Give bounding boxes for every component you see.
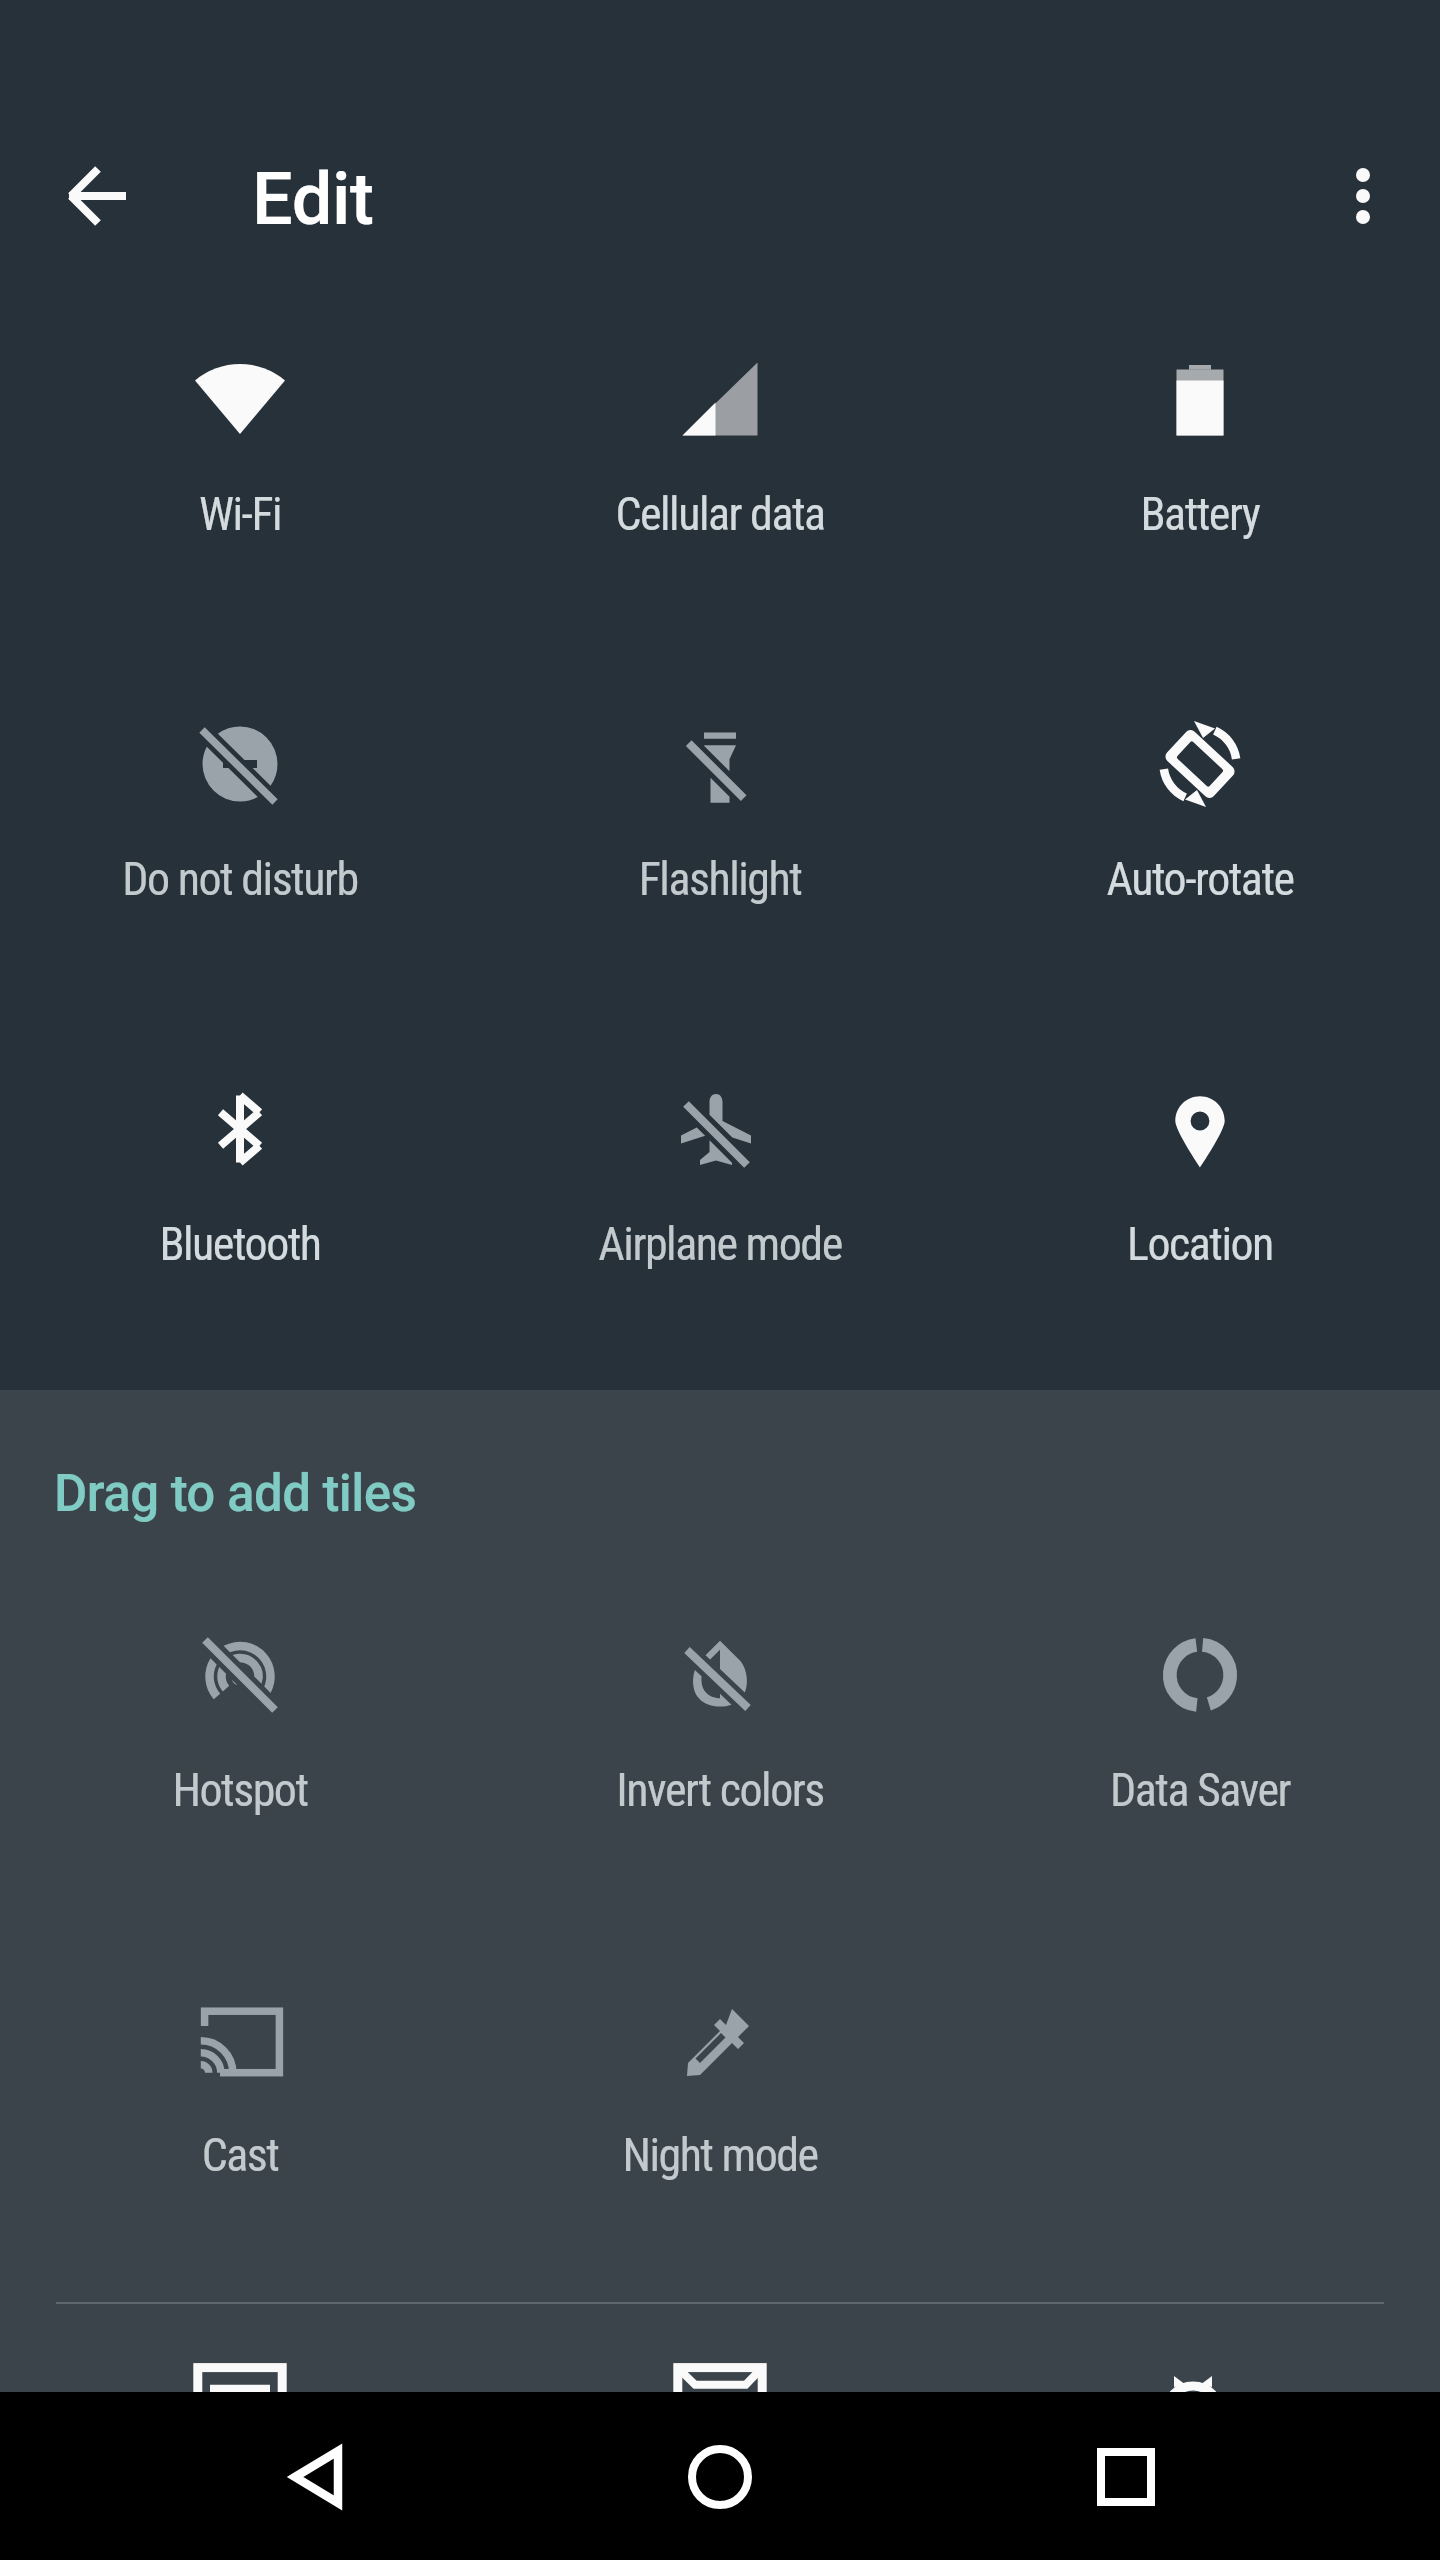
button[interactable]: Cellular data [480,299,960,549]
staticText: Flashlight [480,852,960,906]
staticText: Airplane mode [480,1217,960,1271]
button[interactable]: Back [37,136,157,256]
button[interactable]: Bluetooth [0,1029,480,1279]
staticText: Cast [0,2128,480,2182]
staticText: Night mode [480,2128,960,2182]
staticText: Battery [960,487,1440,541]
staticText: Data Saver [960,1763,1440,1817]
button[interactable]: Night mode [480,1940,960,2190]
button[interactable]: Battery [960,299,1440,549]
staticText: Drag to add tiles [54,1464,417,1524]
button[interactable]: Cast [0,1940,480,2190]
button[interactable]: Wi-Fi [0,299,480,549]
button[interactable]: Auto-rotate [960,664,1440,914]
button[interactable]: Hotspot [0,1575,480,1825]
staticText: Invert colors [480,1763,960,1817]
button[interactable]: Home [636,2393,804,2560]
staticText: Edit [252,157,374,241]
button[interactable]: Location [960,1029,1440,1279]
staticText: Cellular data [480,487,960,541]
staticText: Hotspot [0,1763,480,1817]
button[interactable]: Invert colors [480,1575,960,1825]
staticText: Do not disturb [0,852,480,906]
button[interactable]: Back [233,2393,401,2560]
button[interactable]: Recents [1042,2393,1210,2560]
staticText: Wi-Fi [0,487,480,541]
button[interactable]: Data Saver [960,1575,1440,1825]
staticText: Bluetooth [0,1217,480,1271]
staticText: Auto-rotate [960,852,1440,906]
button[interactable]: Do not disturb [0,664,480,914]
button[interactable]: Airplane mode [480,1029,960,1279]
staticText: Location [960,1217,1440,1271]
button[interactable]: Flashlight [480,664,960,914]
button[interactable]: More options [1303,136,1423,256]
